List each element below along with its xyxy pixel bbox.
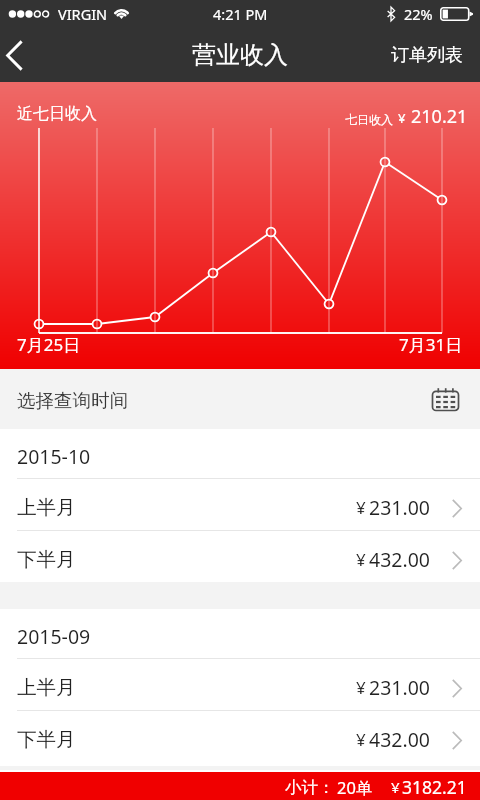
button[interactable]: Back [0,28,38,82]
staticText: 订单列表 [391,44,463,67]
staticText: 432.00 [369,726,430,753]
staticText: 近七日收入 [17,104,97,124]
staticText: 7月25日 [17,333,81,356]
staticText: ¥ [391,777,400,797]
staticText: 营业收入 [192,40,288,70]
button[interactable]: 上半月 [0,659,480,710]
button[interactable]: 下半月 [0,711,480,762]
staticText: 3182.21 [402,775,467,799]
staticText: 上半月 [17,495,76,520]
staticText: ¥ [356,728,366,751]
staticText: 20单 [337,776,373,799]
staticText: 7月31日 [399,333,463,356]
staticText: 231.00 [369,494,430,521]
staticText: ¥ [356,496,366,519]
button[interactable]: 订单列表 [373,28,480,82]
staticText: ¥ [356,676,366,699]
button[interactable]: 2015-10 [0,429,480,478]
staticText: 4:21 PM [213,4,268,24]
staticText: 432.00 [369,546,430,573]
staticText: VIRGIN [58,4,108,24]
staticText: 上半月 [17,675,76,700]
staticText: 小计： [285,777,335,798]
staticText: 下半月 [17,727,76,752]
staticText: 2015-09 [17,623,91,650]
staticText: ¥ [398,109,406,127]
button[interactable]: 2015-09 [0,609,480,658]
button[interactable]: 下半月 [0,531,480,582]
staticText: 选择查询时间 [17,389,128,412]
staticText: 2015-10 [17,443,91,470]
button[interactable]: 选择查询时间 [0,369,480,429]
staticText: 22% [404,4,433,24]
button[interactable]: 上半月 [0,479,480,530]
staticText: 下半月 [17,547,76,572]
staticText: 七日收入 [345,112,393,127]
staticText: 210.21 [411,104,468,129]
staticText: 231.00 [369,674,430,701]
staticText: ¥ [356,548,366,571]
